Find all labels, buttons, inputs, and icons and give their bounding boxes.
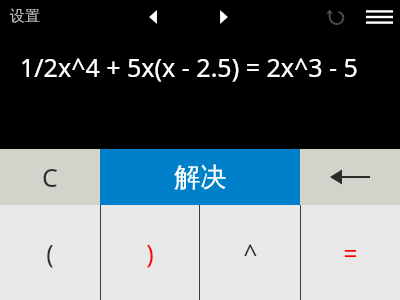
staticText: 1/2x^4 + 5x(x - 2.5) = 2x^3 - 5: [20, 50, 358, 84]
staticText: (: [46, 236, 54, 270]
staticText: 设置: [10, 7, 40, 26]
button[interactable]: C: [0, 149, 100, 205]
button[interactable]: Next: [209, 2, 239, 32]
staticText: C: [42, 160, 58, 194]
button[interactable]: 解决: [100, 149, 300, 205]
button[interactable]: ): [101, 205, 199, 300]
staticText: ): [146, 236, 154, 270]
button[interactable]: 设置: [8, 3, 42, 30]
button[interactable]: =: [301, 205, 400, 300]
button[interactable]: Undo: [321, 2, 351, 32]
staticText: ^: [243, 236, 258, 270]
staticText: =: [343, 236, 358, 270]
button[interactable]: Previous: [138, 2, 168, 32]
button[interactable]: (: [0, 205, 100, 300]
button[interactable]: ^: [200, 205, 300, 300]
button[interactable]: Menu: [362, 2, 396, 32]
button[interactable]: Backspace: [300, 149, 400, 205]
staticText: 解决: [174, 161, 226, 194]
